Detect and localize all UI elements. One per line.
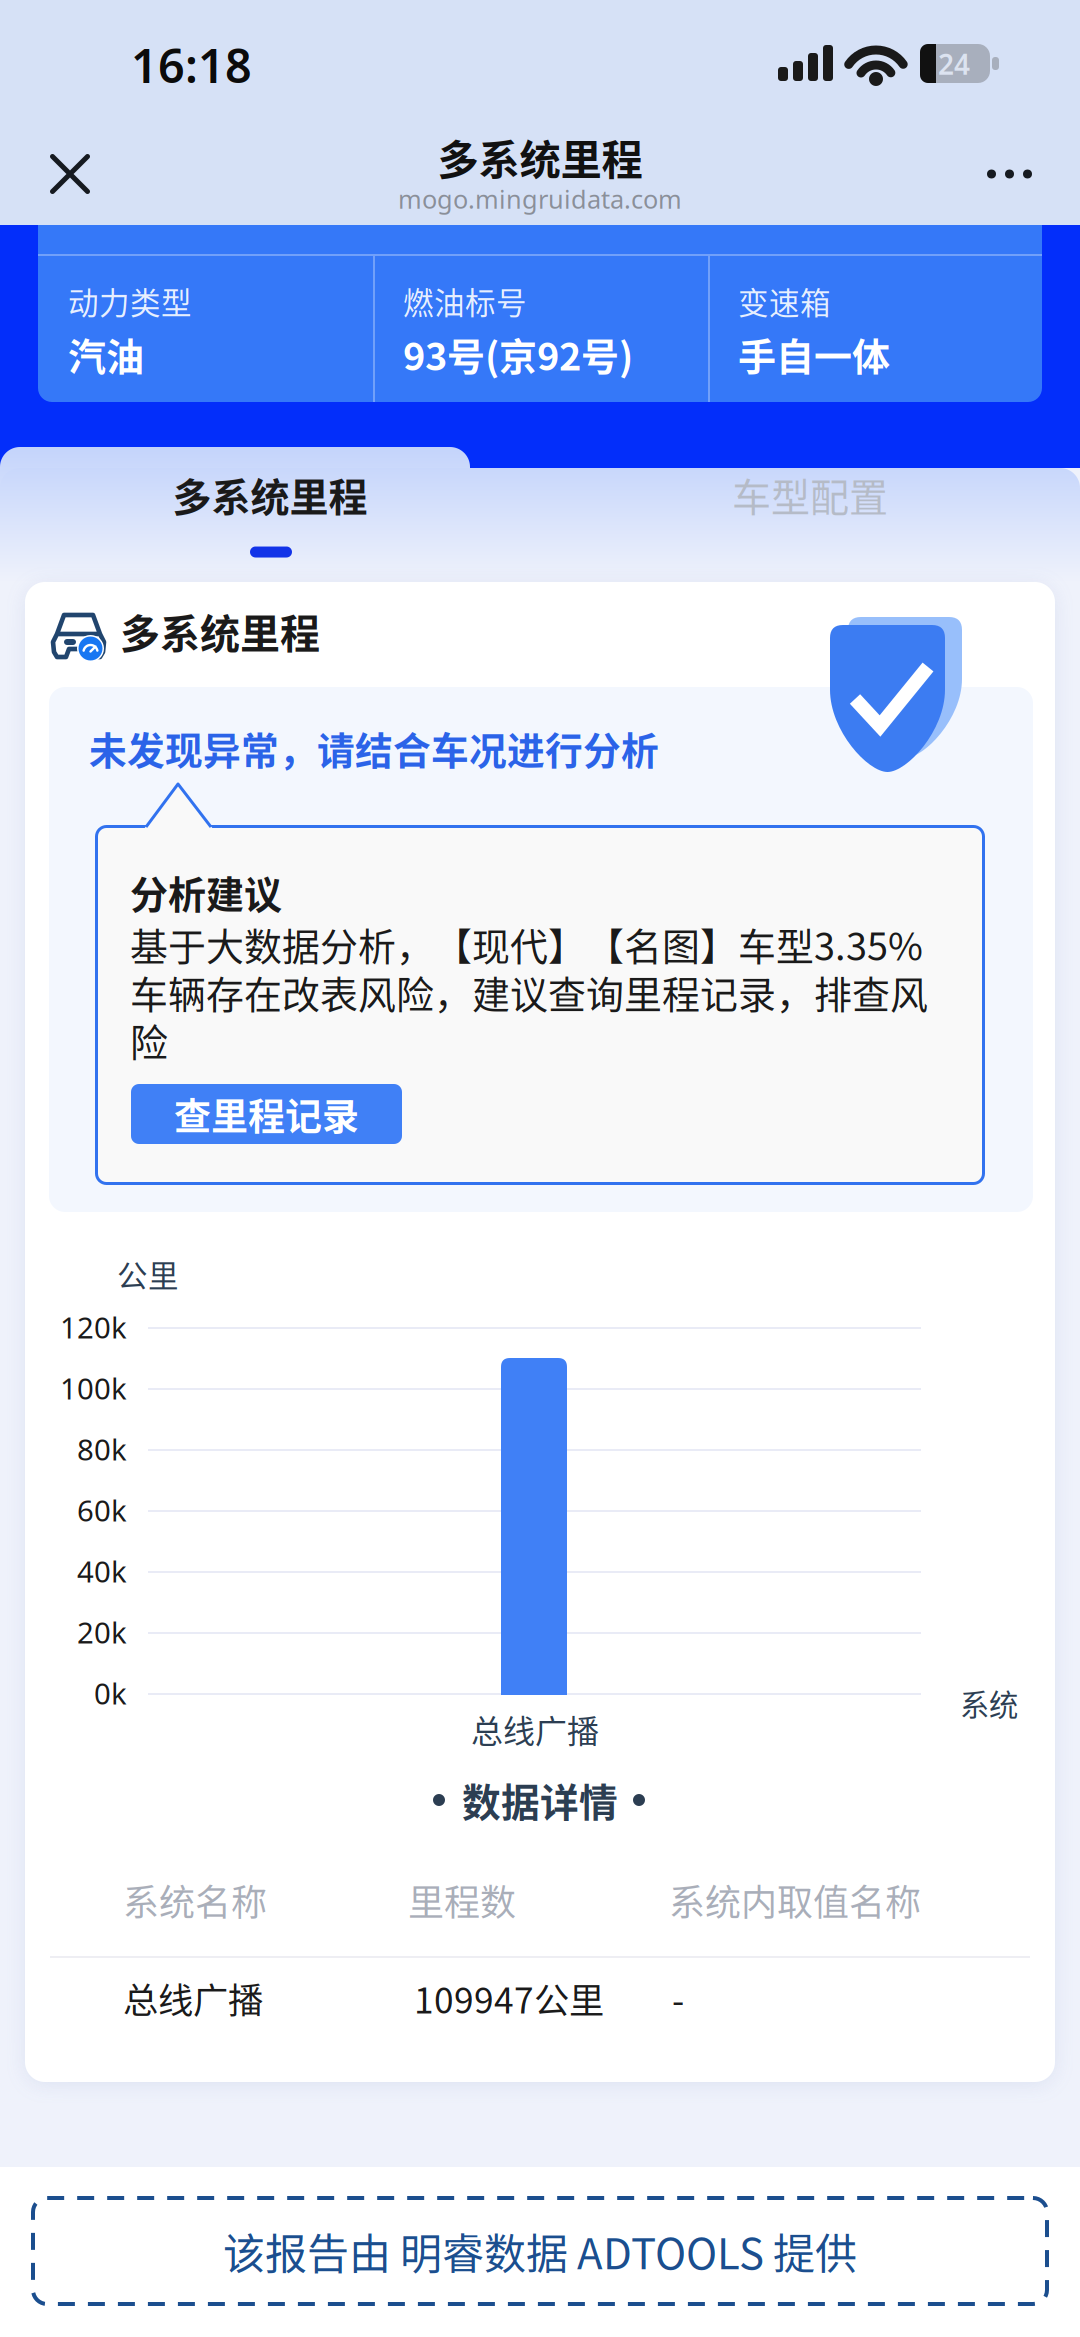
staticText: 120k — [60, 1307, 127, 1346]
staticText: 变速箱 — [738, 279, 831, 323]
staticText: 80k — [77, 1429, 127, 1468]
staticText: 109947公里 — [414, 1972, 604, 2023]
staticText: 总线广播 — [123, 1972, 263, 2023]
button[interactable]: More options — [969, 134, 1059, 214]
staticText: 多系统里程 — [120, 602, 320, 660]
staticText: 93号(京92号) — [403, 326, 633, 381]
button[interactable]: 查里程记录 — [131, 1084, 402, 1144]
staticText: 系统名称 — [123, 1874, 267, 1926]
staticText: 总线广播 — [471, 1706, 599, 1752]
staticText: 动力类型 — [68, 279, 192, 323]
staticText: 车辆存在改表风险，建议查询里程记录，排查风 — [130, 965, 928, 1019]
staticText: 险 — [130, 1013, 168, 1067]
staticText: 分析建议 — [130, 864, 282, 919]
staticText: 60k — [77, 1490, 127, 1529]
button[interactable]: 多系统里程 — [0, 446, 540, 581]
staticText: 该报告由 明睿数据 ADTOOLS 提供 — [223, 2221, 857, 2281]
staticText: 20k — [77, 1612, 127, 1651]
staticText: 系统内取值名称 — [669, 1874, 921, 1926]
button[interactable]: Close — [28, 134, 112, 214]
staticText: 多系统里程 — [437, 127, 642, 187]
staticText: 24 — [938, 45, 970, 83]
staticText: 0k — [94, 1673, 127, 1712]
staticText: - — [672, 1972, 684, 2023]
staticText: 燃油标号 — [403, 279, 527, 323]
button[interactable]: 该报告由 明睿数据 ADTOOLS 提供 — [31, 2196, 1049, 2306]
staticText: 汽油 — [68, 326, 144, 381]
staticText: 里程数 — [408, 1874, 516, 1926]
staticText: 100k — [60, 1368, 127, 1407]
staticText: 系统 — [960, 1682, 1018, 1724]
staticText: 数据详情 — [462, 1772, 618, 1828]
staticText: 手自一体 — [738, 326, 890, 381]
staticText: 公里 — [117, 1252, 179, 1296]
staticText: 40k — [77, 1551, 127, 1590]
staticText: 基于大数据分析，【现代】【名图】车型3.35% — [130, 917, 923, 971]
staticText: 16:18 — [131, 34, 252, 96]
staticText: 查里程记录 — [174, 1087, 359, 1141]
staticText: mogo.mingruidata.com — [398, 182, 682, 216]
staticText: 未发现异常，请结合车况进行分析 — [89, 721, 659, 775]
staticText: 车型配置 — [732, 466, 888, 523]
button[interactable]: 车型配置 — [540, 446, 1080, 581]
staticText: 多系统里程 — [172, 466, 367, 523]
